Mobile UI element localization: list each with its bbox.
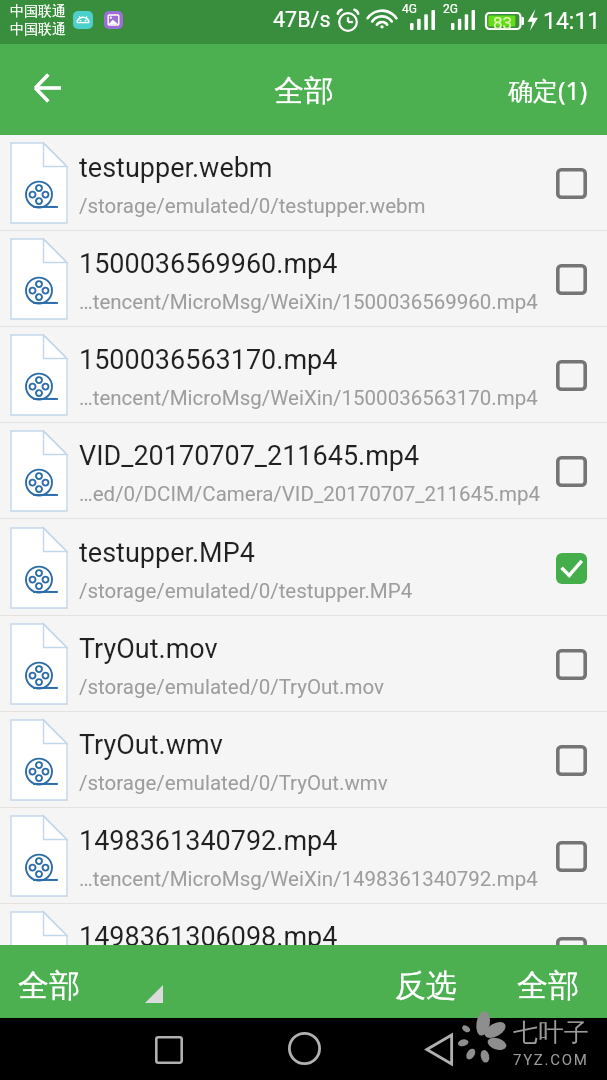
staticText: 全部	[274, 72, 334, 110]
button[interactable]: VID_20170707_211645.mp4	[0, 423, 607, 519]
button[interactable]: testupper.MP4	[0, 520, 607, 616]
button[interactable]: 全部	[503, 945, 593, 1018]
button[interactable]: Select file	[556, 745, 587, 776]
staticText: 1500036569960.mp4	[79, 248, 338, 280]
button[interactable]: Back	[0, 44, 95, 135]
button[interactable]: 1500036569960.mp4	[0, 231, 607, 327]
button[interactable]: 1500036563170.mp4	[0, 327, 607, 423]
staticText: 4G	[402, 2, 417, 16]
button[interactable]: testupper.webm	[0, 135, 607, 231]
staticText: 1498361340792.mp4	[79, 825, 338, 857]
staticText: TryOut.wmv	[79, 729, 223, 761]
staticText: /storage/emulated/0/TryOut.wmv	[79, 771, 388, 795]
button[interactable]: Select file	[556, 649, 587, 680]
button[interactable]: 反选	[381, 945, 471, 1018]
staticText: /storage/emulated/0/testupper.MP4	[79, 579, 413, 603]
staticText: …ed/0/DCIM/Camera/VID_20170707_211645.mp…	[79, 482, 541, 506]
staticText: 反选	[395, 966, 457, 1001]
staticText: 83	[493, 13, 513, 33]
staticText: 确定(1)	[508, 73, 588, 107]
staticText: 14:11	[543, 8, 601, 35]
button[interactable]: Select file	[556, 937, 587, 945]
button[interactable]: 1498361306098.mp4	[0, 904, 607, 945]
staticText: 47B/s	[273, 7, 331, 32]
staticText: 7YZ.COM	[513, 1051, 589, 1069]
staticText: …tencent/MicroMsg/WeiXin/1498361340792.m…	[79, 867, 538, 891]
button[interactable]: Select file	[556, 360, 587, 391]
staticText: 全部	[18, 966, 80, 1001]
button[interactable]: Select file	[556, 456, 587, 487]
button[interactable]: Back	[411, 1021, 467, 1077]
button[interactable]: 全部	[4, 945, 94, 1018]
staticText: testupper.webm	[79, 152, 273, 184]
button[interactable]: Home	[276, 1020, 332, 1076]
staticText: VID_20170707_211645.mp4	[79, 440, 420, 472]
staticText: 1498361306098.mp4	[79, 921, 338, 945]
button[interactable]: Select file	[556, 264, 587, 295]
staticText: TryOut.mov	[79, 633, 218, 665]
button[interactable]: 确定(1)	[490, 55, 607, 125]
staticText: /storage/emulated/0/TryOut.mov	[79, 675, 384, 699]
staticText: 七叶子	[513, 1017, 590, 1048]
staticText: 中国联通	[10, 3, 66, 21]
staticText: 全部	[517, 966, 579, 1001]
button[interactable]: Select file	[556, 841, 587, 872]
staticText: …tencent/MicroMsg/WeiXin/1500036569960.m…	[79, 290, 538, 314]
button[interactable]: 1498361340792.mp4	[0, 808, 607, 904]
button[interactable]: Recent apps	[141, 1022, 197, 1078]
staticText: 中国联通	[10, 21, 66, 39]
button[interactable]: TryOut.mov	[0, 616, 607, 712]
staticText: …tencent/MicroMsg/WeiXin/1500036563170.m…	[79, 386, 538, 410]
button[interactable]: TryOut.wmv	[0, 712, 607, 808]
staticText: /storage/emulated/0/testupper.webm	[79, 194, 426, 218]
staticText: 2G	[443, 2, 458, 16]
staticText: 1500036563170.mp4	[79, 344, 338, 376]
staticText: testupper.MP4	[79, 537, 255, 569]
button[interactable]: Select file	[556, 553, 587, 584]
button[interactable]: Select file	[556, 168, 587, 199]
